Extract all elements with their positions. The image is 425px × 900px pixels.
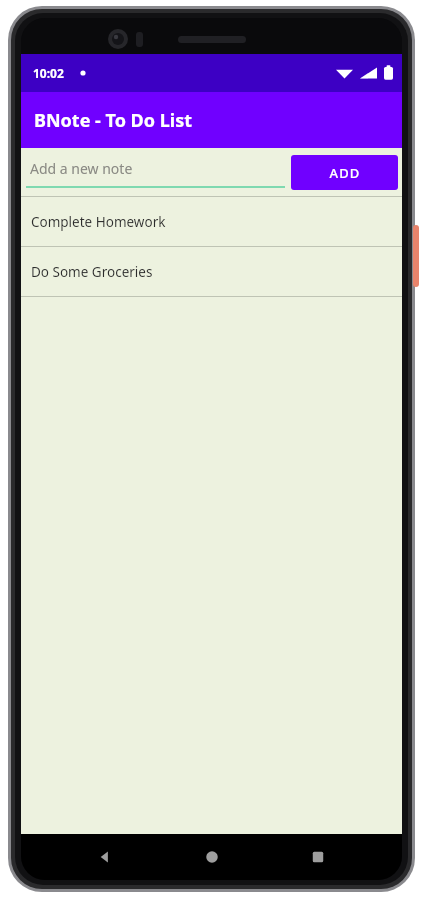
button[interactable]: Complete Homework	[21, 197, 402, 246]
button[interactable]: Do Some Groceries	[21, 247, 402, 296]
button[interactable]: Back	[82, 834, 128, 880]
staticText: ADD	[329, 164, 361, 182]
button[interactable]: Recent apps	[295, 834, 341, 880]
staticText: Complete Homework	[31, 213, 166, 231]
button[interactable]: Add a new note	[26, 148, 285, 196]
staticText: Do Some Groceries	[31, 263, 153, 281]
button[interactable]: Home	[189, 834, 235, 880]
staticText: 10:02	[33, 65, 64, 81]
staticText: BNote - To Do List	[34, 108, 192, 133]
staticText: Add a new note	[30, 159, 133, 178]
button[interactable]: ADD	[291, 155, 398, 190]
